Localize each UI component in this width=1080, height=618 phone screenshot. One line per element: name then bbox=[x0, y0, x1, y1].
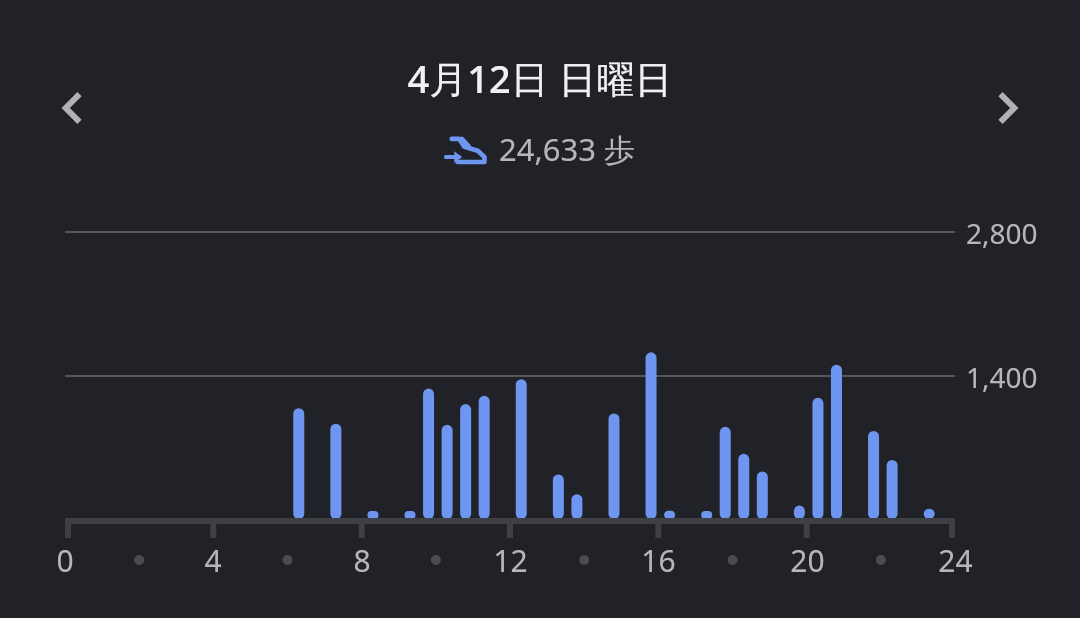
staticText: 24 bbox=[938, 540, 973, 581]
button[interactable]: 24,633 歩 bbox=[0, 126, 1080, 172]
staticText: 2,800 bbox=[966, 214, 1038, 252]
staticText: 8 bbox=[353, 540, 371, 581]
button[interactable]: Next day bbox=[966, 68, 1046, 148]
staticText: 20 bbox=[790, 540, 825, 581]
staticText: 16 bbox=[641, 540, 676, 581]
button[interactable]: 4月12日 日曜日 bbox=[0, 50, 1080, 106]
button[interactable]: Previous day bbox=[34, 68, 114, 148]
staticText: 4 bbox=[204, 540, 222, 581]
staticText: 0 bbox=[56, 540, 74, 581]
staticText: 4月12日 日曜日 bbox=[407, 52, 673, 104]
staticText: 24,633 歩 bbox=[499, 128, 636, 170]
staticText: 1,400 bbox=[966, 358, 1038, 396]
staticText: 12 bbox=[493, 540, 528, 581]
